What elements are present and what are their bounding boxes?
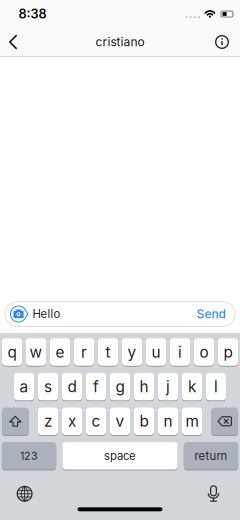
staticText: e (55, 343, 64, 361)
button[interactable]: space (62, 442, 178, 470)
staticText: c (91, 412, 100, 431)
staticText: x (68, 412, 76, 431)
staticText: z (44, 412, 52, 431)
button[interactable]: r (74, 338, 94, 366)
staticText: h (139, 377, 148, 396)
button[interactable]: f (86, 373, 106, 400)
button[interactable]: a (14, 373, 34, 400)
staticText: q (7, 343, 16, 361)
staticText: r (81, 343, 87, 361)
staticText: s (44, 377, 52, 396)
staticText: l (214, 377, 218, 396)
button[interactable]: return (184, 442, 238, 470)
staticText: 8:38 (18, 6, 46, 22)
button[interactable]: Dictation (207, 485, 240, 502)
button[interactable]: c (86, 407, 106, 435)
button[interactable]: Camera (4, 305, 28, 322)
staticText: b (139, 412, 148, 431)
button[interactable]: Back (0, 28, 25, 56)
staticText: y (127, 343, 136, 361)
staticText: a (19, 377, 28, 396)
button[interactable]: x (62, 407, 82, 435)
button[interactable]: b (134, 407, 154, 435)
button[interactable]: Details (215, 28, 240, 56)
button[interactable]: d (62, 373, 82, 400)
staticText: f (93, 377, 99, 396)
staticText: k (188, 377, 196, 396)
button[interactable]: s (38, 373, 58, 400)
button[interactable]: j (158, 373, 178, 400)
staticText: n (163, 412, 172, 431)
button[interactable]: Delete (211, 407, 238, 435)
staticText: Hello (32, 307, 60, 321)
button[interactable]: g (110, 373, 130, 400)
staticText: m (185, 412, 198, 431)
button[interactable]: e (50, 338, 70, 366)
staticText: v (115, 412, 124, 431)
staticText: space (104, 449, 136, 463)
button[interactable]: k (182, 373, 202, 400)
button[interactable]: q (2, 338, 22, 366)
button[interactable]: o (194, 338, 214, 366)
button[interactable]: Next keyboard (0, 486, 33, 502)
button[interactable]: p (218, 338, 238, 366)
staticText: 123 (20, 449, 38, 462)
button[interactable]: m (182, 407, 202, 435)
staticText: d (67, 377, 76, 396)
staticText: cristiano (95, 35, 144, 49)
button[interactable]: z (38, 407, 58, 435)
staticText: return (194, 449, 227, 463)
staticText: t (105, 343, 110, 361)
button[interactable]: n (158, 407, 178, 435)
staticText: o (199, 343, 208, 361)
button[interactable]: 123 (2, 442, 56, 470)
button[interactable]: h (134, 373, 154, 400)
button[interactable]: i (170, 338, 190, 366)
button[interactable]: l (206, 373, 226, 400)
button[interactable]: t (98, 338, 118, 366)
button[interactable]: y (122, 338, 142, 366)
staticText: j (166, 377, 170, 396)
staticText: p (223, 343, 232, 361)
button[interactable]: Send (196, 307, 235, 321)
staticText: Send (196, 307, 225, 321)
button[interactable]: w (26, 338, 46, 366)
button[interactable]: u (146, 338, 166, 366)
staticText: w (29, 343, 42, 361)
button[interactable]: v (110, 407, 130, 435)
staticText: g (115, 377, 124, 396)
button[interactable]: Shift (2, 407, 29, 435)
staticText: u (151, 343, 160, 361)
staticText: i (178, 343, 182, 361)
